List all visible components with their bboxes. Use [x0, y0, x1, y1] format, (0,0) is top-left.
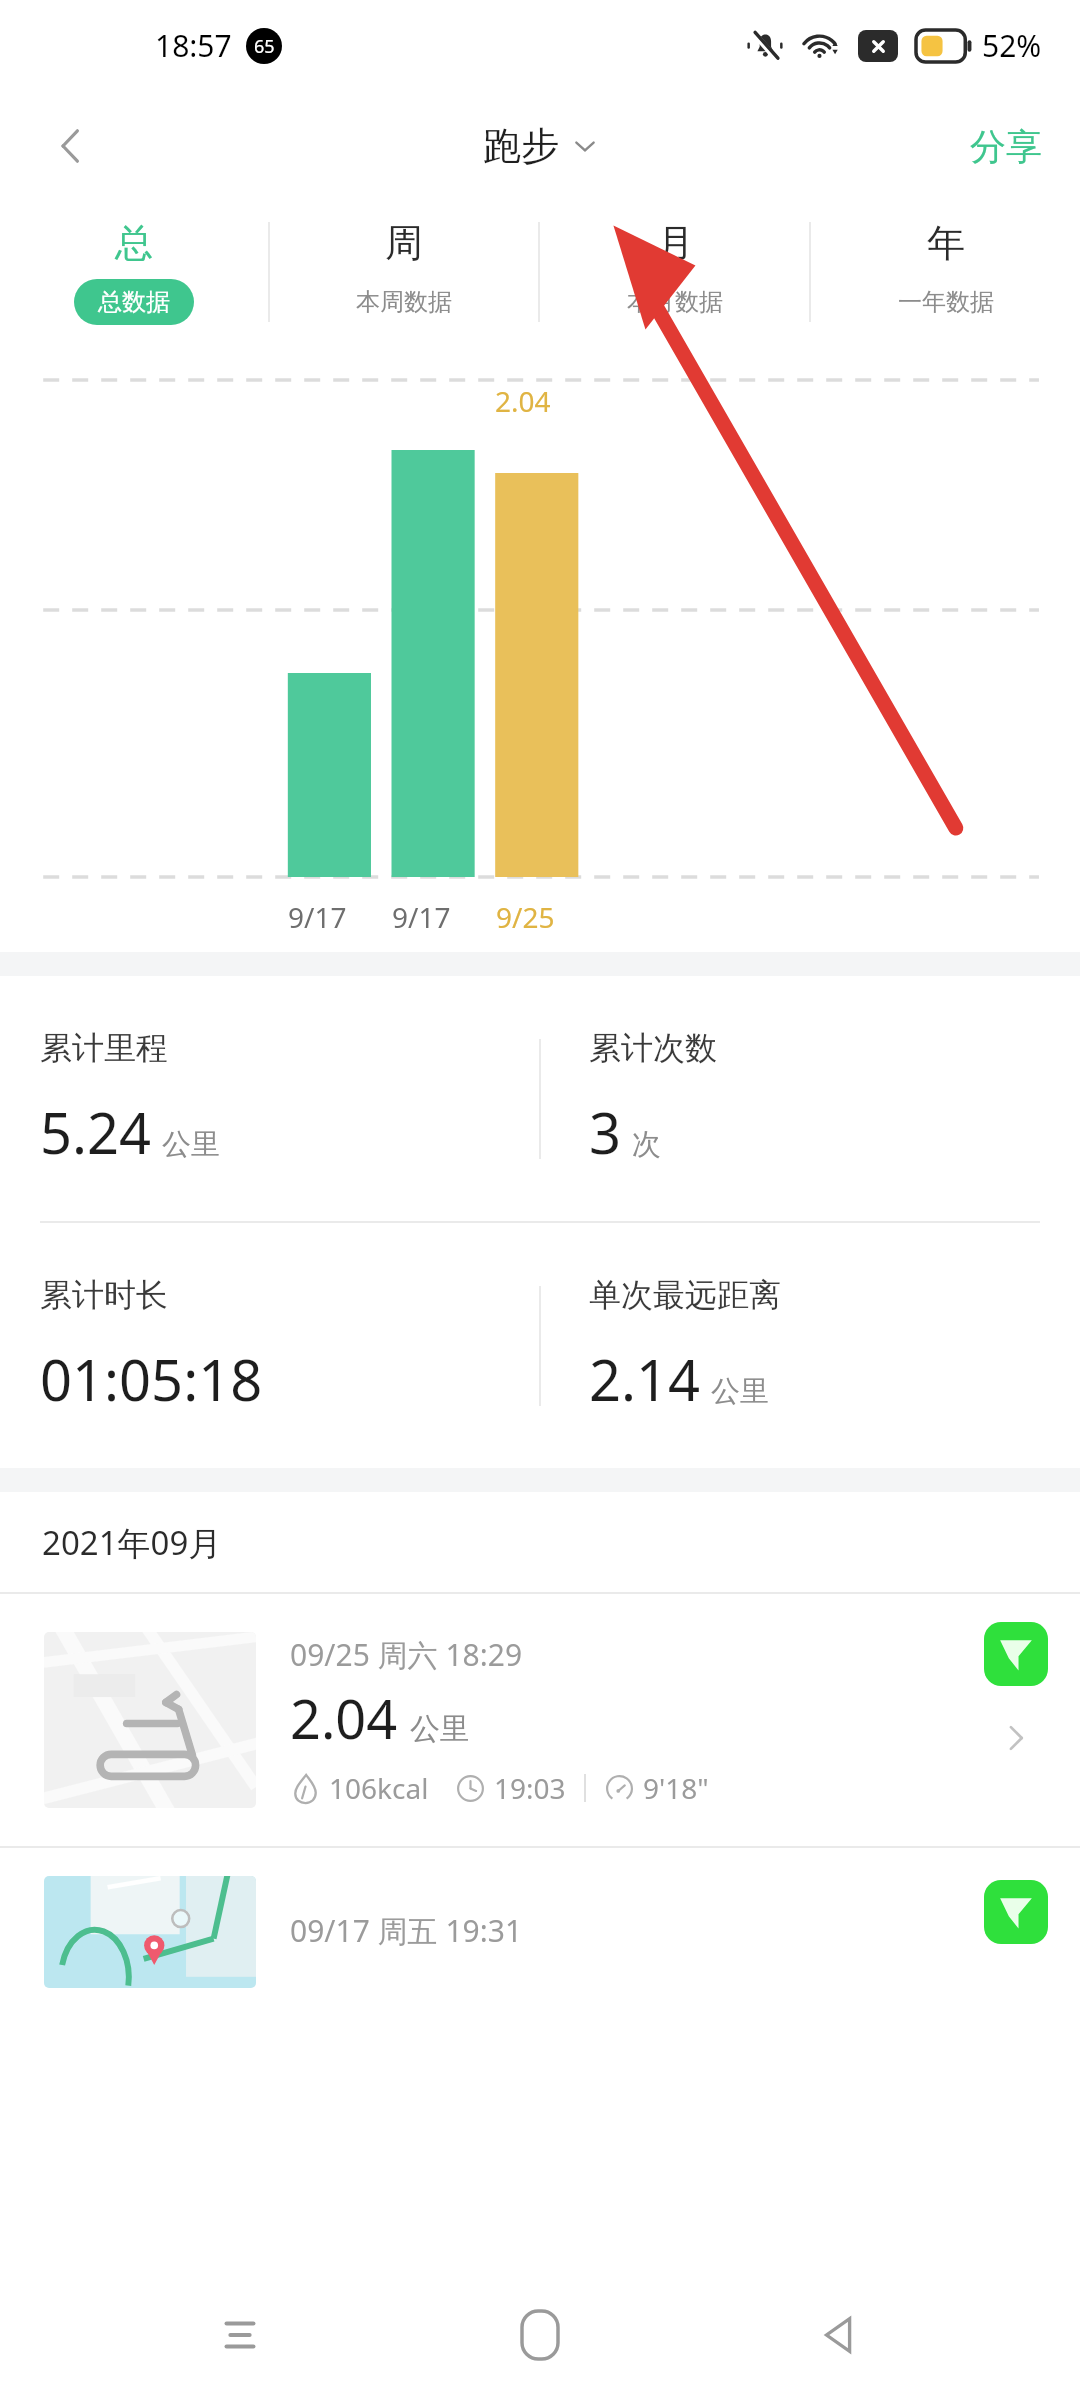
staticText: 累计次数: [589, 1028, 717, 1068]
staticText: 106kcal: [329, 1769, 429, 1807]
button[interactable]: 总: [0, 202, 268, 342]
button[interactable]: Home: [480, 2275, 600, 2395]
staticText: 2.14: [589, 1341, 701, 1417]
staticText: 2.04: [290, 1681, 398, 1755]
staticText: 分享: [970, 124, 1042, 169]
button[interactable]: 跑步: [483, 122, 597, 170]
staticText: 累计里程: [40, 1028, 168, 1068]
staticText: 9/17: [392, 898, 451, 936]
staticText: 跑步: [483, 122, 559, 170]
button[interactable]: 月: [540, 202, 809, 342]
staticText: 65: [254, 34, 275, 59]
staticText: 本周数据: [356, 287, 452, 317]
staticText: 3: [589, 1094, 622, 1170]
button[interactable]: 09/25 周六 18:29: [0, 1594, 1080, 1846]
staticText: 09/17 周五 19:31: [290, 1910, 523, 1951]
staticText: 本月数据: [627, 287, 723, 317]
staticText: 累计时长: [40, 1275, 168, 1315]
staticText: 次: [632, 1126, 661, 1163]
button[interactable]: Back: [28, 103, 114, 189]
staticText: 19:03: [494, 1769, 566, 1807]
staticText: 年: [927, 219, 965, 267]
staticText: 18:57: [155, 25, 232, 66]
button[interactable]: 09/17 周五 19:31: [0, 1848, 1080, 2038]
staticText: 9'18": [643, 1769, 709, 1807]
staticText: 月: [656, 219, 694, 267]
staticText: 2.04: [495, 382, 551, 420]
button[interactable]: 年: [811, 202, 1080, 342]
staticText: 一年数据: [898, 287, 994, 317]
staticText: 09/25 周六 18:29: [290, 1634, 523, 1675]
staticText: 9/17: [288, 898, 347, 936]
staticText: 5.24: [40, 1094, 152, 1170]
staticText: 公里: [711, 1373, 769, 1410]
staticText: 2021年09月: [42, 1520, 222, 1565]
staticText: 9/25: [496, 898, 555, 936]
button[interactable]: Back: [780, 2275, 900, 2395]
staticText: 周: [385, 219, 423, 267]
staticText: 总: [115, 219, 153, 267]
button[interactable]: Recent apps: [180, 2275, 300, 2395]
staticText: 52%: [982, 25, 1042, 66]
staticText: 01:05:18: [40, 1341, 263, 1417]
staticText: 公里: [410, 1710, 470, 1748]
staticText: 单次最远距离: [589, 1275, 781, 1315]
button[interactable]: 周: [270, 202, 538, 342]
button[interactable]: 分享: [962, 112, 1050, 181]
staticText: 公里: [162, 1126, 220, 1163]
staticText: 总数据: [98, 287, 170, 317]
